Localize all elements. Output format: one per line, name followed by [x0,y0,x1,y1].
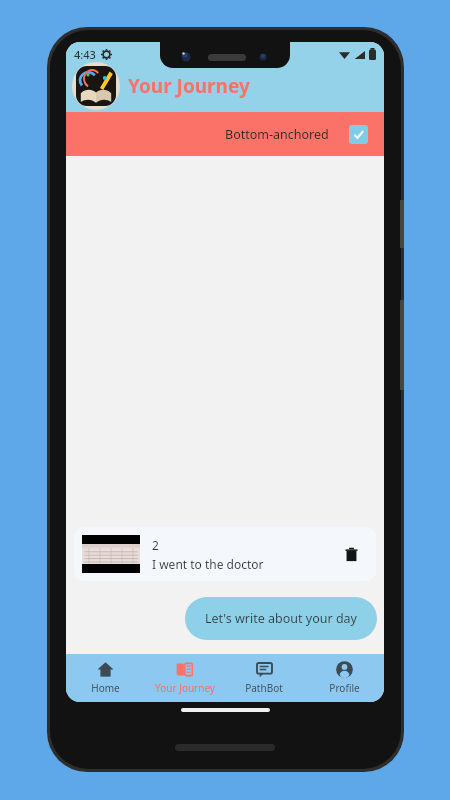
button[interactable]: Let's write about your day [185,597,377,640]
button[interactable]: Bottom-anchored toggle [349,125,368,144]
button[interactable]: Home [66,654,145,702]
staticText: I went to the doctor [152,556,264,572]
button[interactable]: Delete entry [334,537,368,571]
staticText: Profile [329,681,360,695]
staticText: Bottom-anchored [225,126,329,143]
staticText: PathBot [245,681,283,695]
button[interactable]: PathBot [224,654,304,702]
staticText: Home [91,681,120,695]
staticText: 4:43 [74,47,96,62]
button[interactable]: Profile [304,654,384,702]
staticText: 2 [152,537,159,553]
staticText: Let's write about your day [205,610,357,627]
staticText: Your Journey [128,73,250,99]
button[interactable]: Your Journey [145,654,224,702]
staticText: Your Journey [155,681,215,695]
button[interactable]: 2 [74,527,376,581]
